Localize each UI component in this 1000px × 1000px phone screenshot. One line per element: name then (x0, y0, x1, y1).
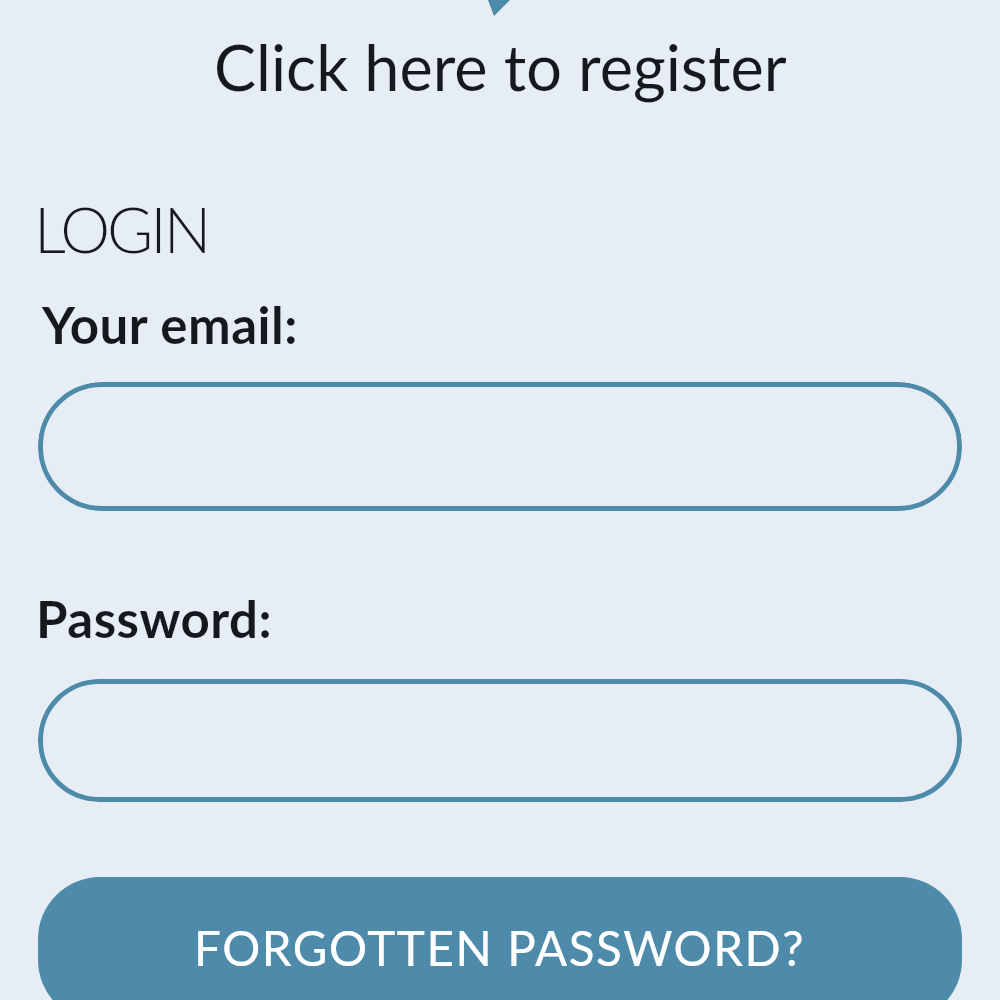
button[interactable] (38, 679, 962, 802)
staticText: Password: (36, 588, 273, 649)
staticText: Click here to register (214, 29, 787, 105)
button[interactable]: FORGOTTEN PASSWORD? (38, 877, 962, 1000)
staticText: FORGOTTEN PASSWORD? (194, 919, 806, 976)
staticText: LOGIN (34, 191, 209, 267)
button[interactable]: Click here to register (214, 29, 787, 105)
button[interactable] (38, 382, 962, 511)
staticText: Your email: (42, 294, 298, 355)
